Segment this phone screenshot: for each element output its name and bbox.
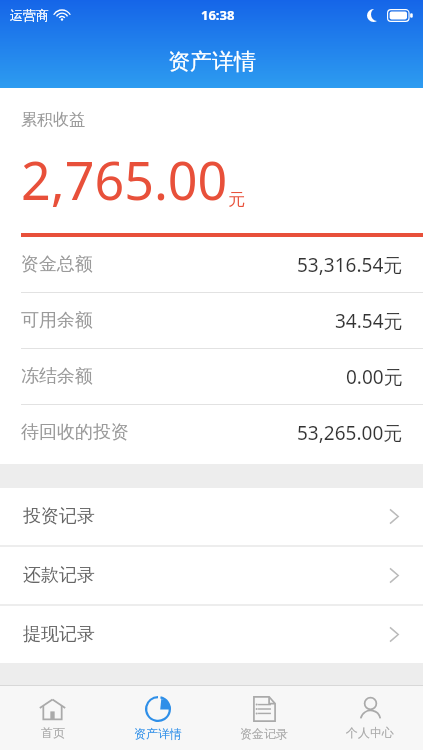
staticText: 资产详情 (134, 726, 182, 741)
staticText: 资金总额 (21, 253, 93, 276)
button[interactable]: 投资记录 (0, 488, 423, 545)
staticText: 16:38 (201, 6, 235, 24)
button[interactable]: 资金记录 (211, 686, 317, 750)
staticText: 资产详情 (168, 48, 256, 76)
button[interactable]: 还款记录 (0, 547, 423, 604)
button[interactable]: 首页 (0, 686, 105, 750)
button[interactable]: 提现记录 (0, 606, 423, 663)
staticText: 34.54元 (335, 308, 403, 334)
staticText: 53,316.54元 (297, 252, 403, 278)
staticText: 0.00元 (346, 364, 403, 390)
staticText: 投资记录 (23, 505, 95, 528)
staticText: 2,765.00 (21, 144, 228, 215)
staticText: 资金记录 (240, 726, 288, 741)
staticText: 还款记录 (23, 564, 95, 587)
button[interactable]: 资产详情 (105, 686, 211, 750)
staticText: 53,265.00元 (297, 420, 403, 446)
staticText: 累积收益 (21, 110, 85, 130)
staticText: 待回收的投资 (21, 421, 129, 444)
staticText: 首页 (41, 725, 65, 740)
button[interactable]: 个人中心 (317, 686, 423, 750)
staticText: 冻结余额 (21, 365, 93, 388)
staticText: 提现记录 (23, 623, 95, 646)
staticText: 个人中心 (346, 725, 394, 740)
staticText: 元 (228, 189, 245, 210)
staticText: 运营商 (10, 7, 49, 23)
staticText: 可用余额 (21, 309, 93, 332)
